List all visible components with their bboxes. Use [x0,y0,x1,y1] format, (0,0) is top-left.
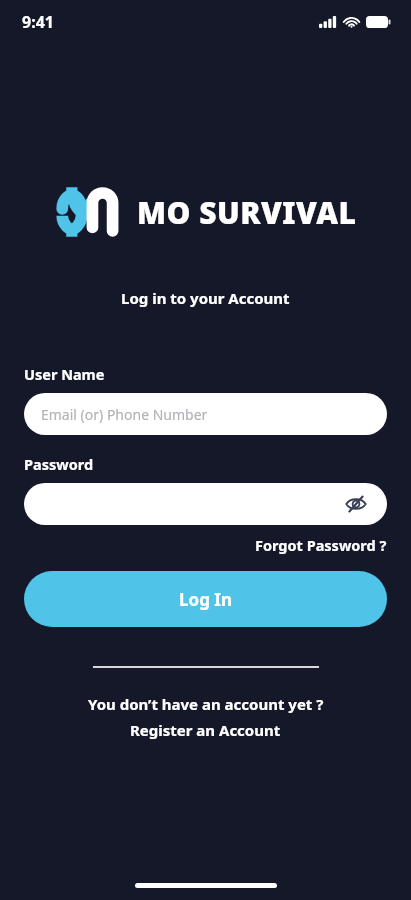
button[interactable]: Forgot Password ? [255,535,387,555]
staticText: MO SURVIVAL [137,192,357,233]
staticText: Log In [179,588,232,611]
staticText: Register an Account [130,720,281,740]
staticText: Forgot Password ? [255,535,387,555]
button[interactable]: Email (or) Phone Number [24,393,387,435]
staticText: Log in to your Account [121,288,290,308]
button[interactable]: Show password [24,483,387,525]
button[interactable]: Register an Account [130,720,281,740]
staticText: Password [24,454,94,474]
staticText: 9:41 [22,11,54,33]
staticText: Email (or) Phone Number [41,405,208,424]
staticText: You don’t have an account yet ? [88,694,324,714]
button[interactable]: Log In [24,571,387,627]
staticText: User Name [24,364,105,384]
button[interactable]: Show password [341,489,371,519]
